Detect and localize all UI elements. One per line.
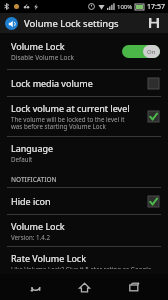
- button[interactable]: Lock media volume: [0, 70, 168, 96]
- staticText: Lock volume at current level: [11, 102, 130, 114]
- button[interactable]: Home: [69, 274, 99, 300]
- button[interactable]: Back: [20, 274, 50, 300]
- staticText: The volume will be locked to the level i…: [11, 115, 125, 131]
- staticText: On: [147, 48, 156, 56]
- staticText: Disable Volume Lock: [11, 53, 74, 62]
- button[interactable]: Hide icon checkbox: [148, 196, 159, 207]
- button[interactable]: Lock volume at current level checkbox: [148, 111, 159, 122]
- staticText: Lock media volume: [11, 77, 93, 89]
- staticText: Default: [11, 155, 33, 163]
- staticText: Volume Lock settings: [24, 17, 119, 30]
- staticText: 100%: [117, 3, 133, 11]
- button[interactable]: Language: [0, 137, 168, 168]
- staticText: 17:57: [147, 2, 165, 12]
- staticText: Hide icon: [11, 195, 51, 207]
- button[interactable]: Lock media volume checkbox: [148, 78, 159, 89]
- button[interactable]: Save: [145, 14, 163, 32]
- staticText: Rate Volume Lock: [11, 252, 86, 264]
- staticText: Language: [11, 142, 54, 154]
- staticText: NOTIFICATION: [11, 175, 57, 184]
- button[interactable]: Volume Lock toggle: [122, 44, 160, 58]
- button[interactable]: Rate Volume Lock: [0, 247, 168, 274]
- other: App icon: [5, 17, 18, 30]
- staticText: Volume Lock: [11, 220, 65, 232]
- button[interactable]: Recent apps: [119, 274, 149, 300]
- button[interactable]: Volume Lock: [0, 215, 168, 246]
- staticText: Volume Lock: [11, 40, 65, 52]
- button[interactable]: Lock volume at current level: [0, 97, 168, 136]
- button[interactable]: Hide icon: [0, 188, 168, 214]
- button[interactable]: Volume Lock: [0, 33, 168, 69]
- staticText: Version: 1.4.2: [11, 233, 50, 241]
- staticText: Like Volume Lock? Give it 5-star rating …: [11, 265, 152, 269]
